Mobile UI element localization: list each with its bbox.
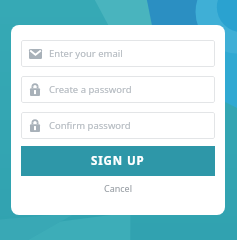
staticText: Create a password xyxy=(49,83,132,96)
button[interactable]: SIGN UP xyxy=(21,146,215,176)
staticText: Enter your email xyxy=(49,47,123,60)
button[interactable]: Password xyxy=(21,112,215,139)
other: Password xyxy=(21,112,49,139)
staticText: Confirm password xyxy=(49,119,131,132)
button[interactable]: Cancel xyxy=(21,176,215,200)
button[interactable]: Password xyxy=(21,76,215,103)
other: Email xyxy=(21,40,49,67)
other: Password xyxy=(21,76,49,103)
staticText: Cancel xyxy=(104,182,133,194)
button[interactable]: Email xyxy=(21,40,215,67)
staticText: SIGN UP xyxy=(91,153,145,169)
